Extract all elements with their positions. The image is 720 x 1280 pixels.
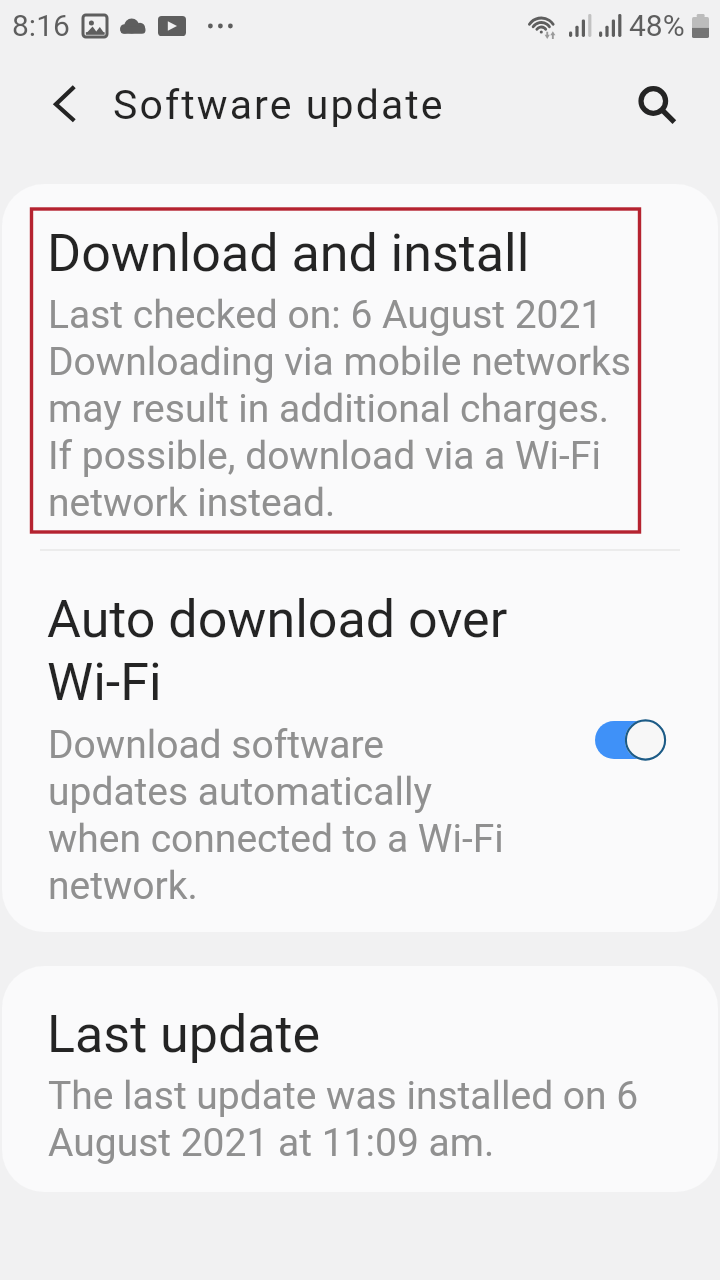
- button[interactable]: Back: [42, 80, 90, 128]
- button[interactable]: Search: [628, 76, 684, 132]
- staticText: Software update: [113, 78, 445, 130]
- staticText: Last checked on: 6 August 2021 Downloadi…: [48, 291, 631, 526]
- staticText: 48%: [629, 8, 685, 43]
- staticText: The last update was installed on 6 Augus…: [48, 1072, 639, 1166]
- button[interactable]: Auto download over Wi-Fi: [592, 718, 668, 762]
- staticText: Auto download over Wi-Fi: [47, 587, 508, 713]
- staticText: 8:16: [12, 8, 70, 43]
- staticText: Download and install: [47, 222, 530, 284]
- button[interactable]: Last update: [2, 966, 718, 1192]
- staticText: Download software updates automatically …: [48, 721, 504, 909]
- staticText: Last update: [47, 1003, 321, 1065]
- button[interactable]: Auto download over Wi-Fi: [2, 550, 718, 932]
- button[interactable]: Download and install: [2, 184, 718, 548]
